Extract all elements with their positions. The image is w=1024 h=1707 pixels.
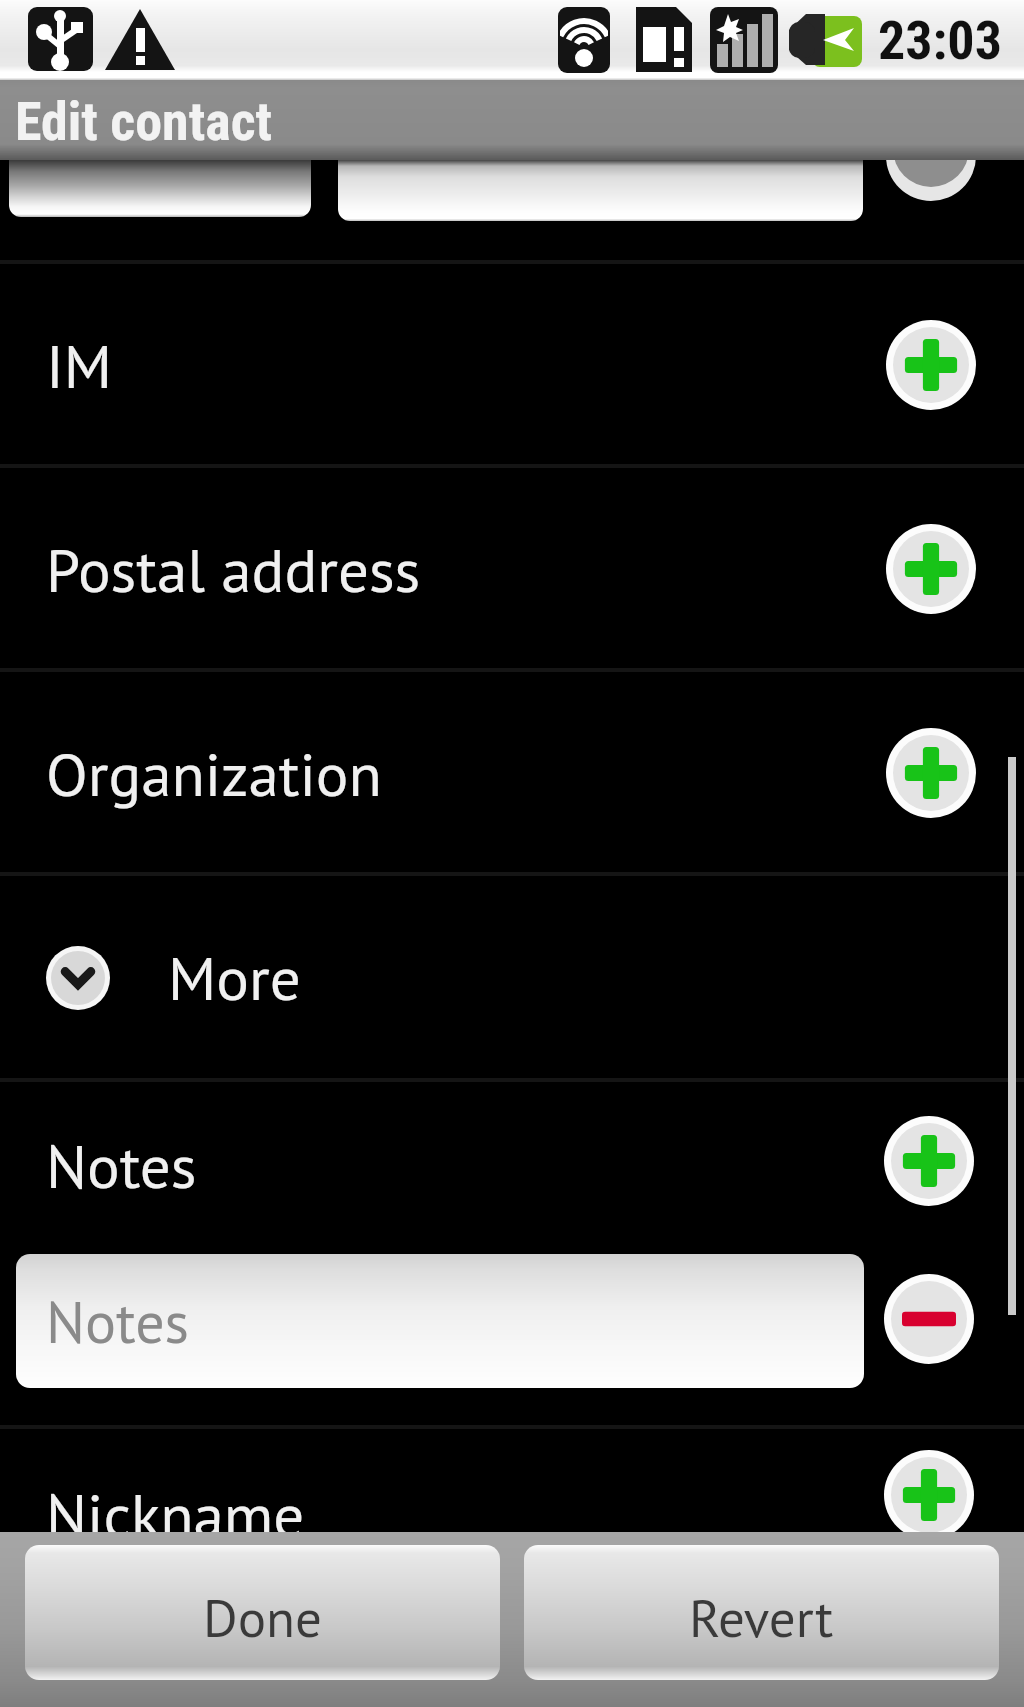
staticText: Done [203, 1583, 322, 1652]
button[interactable]: Add Organization [882, 724, 980, 822]
button[interactable]: Remove note [880, 1270, 978, 1368]
staticText: Nickname [46, 1475, 305, 1554]
button[interactable]: Add Postal address [882, 520, 980, 618]
button[interactable]: Add IM [882, 316, 980, 414]
other: Expand more fields [46, 946, 110, 1010]
button[interactable]: Add Nickname [880, 1446, 978, 1544]
staticText: Notes [46, 1126, 197, 1205]
button[interactable]: Phone number [338, 160, 863, 221]
staticText: Revert [689, 1583, 834, 1652]
staticText: 23:03 [878, 9, 1002, 72]
staticText: Edit contact [15, 90, 273, 153]
button[interactable]: Postal address [0, 467, 1024, 671]
staticText: Organization [46, 734, 382, 813]
button[interactable]: Expand more fields [0, 876, 1024, 1079]
button[interactable]: Remove phone number [886, 121, 976, 191]
button[interactable]: IM [0, 263, 1024, 467]
button[interactable]: Organization [0, 671, 1024, 875]
staticText: Notes [46, 1284, 190, 1359]
button[interactable]: Done [25, 1545, 500, 1680]
button[interactable]: Add note [880, 1112, 978, 1210]
button[interactable]: Phone number type [9, 160, 311, 217]
button[interactable]: Nickname [0, 1428, 1024, 1532]
staticText: More [168, 938, 301, 1017]
button[interactable]: Revert [524, 1545, 999, 1680]
staticText: IM [46, 326, 113, 405]
staticText: Postal address [46, 530, 421, 609]
